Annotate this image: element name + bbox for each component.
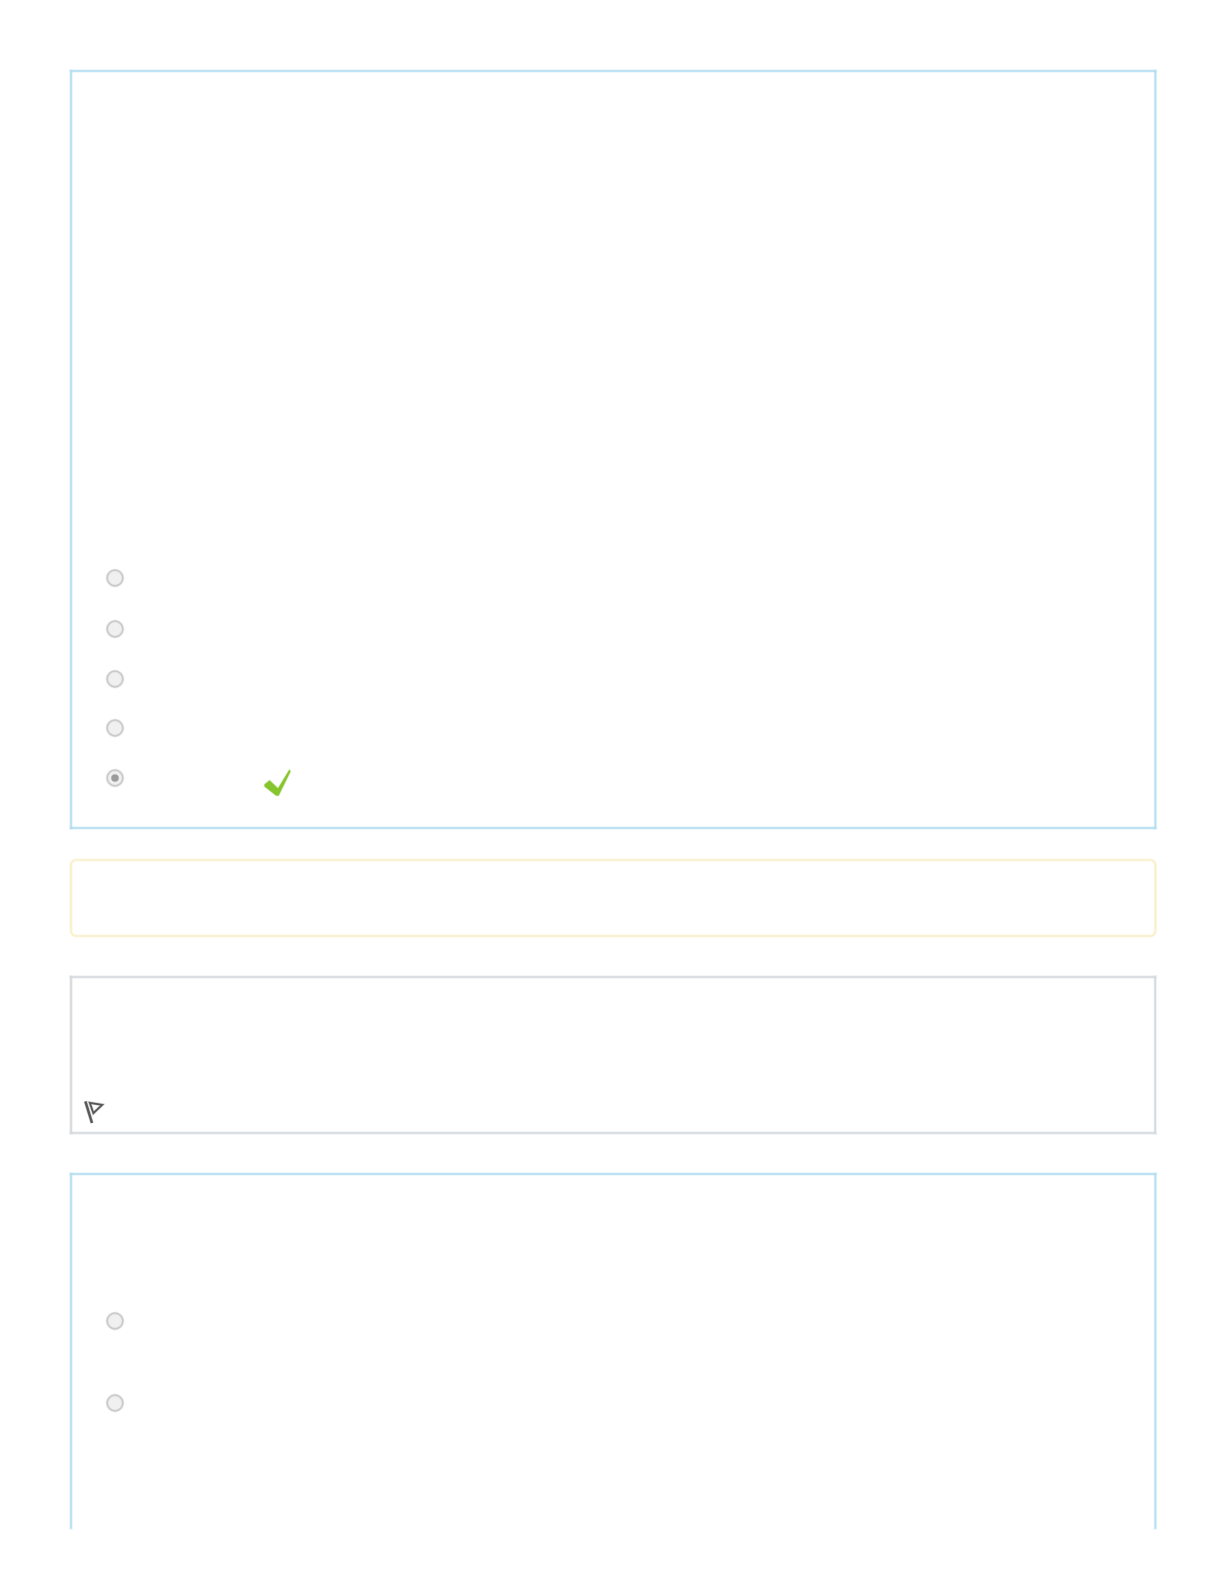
button[interactable]: Report this question <box>80 1096 110 1128</box>
button[interactable]: Question card <box>71 71 1156 828</box>
button[interactable]: Choice 2 <box>101 1389 129 1417</box>
button[interactable]: Choice 1 <box>101 1307 129 1335</box>
button[interactable]: Answer option 5 <box>101 764 129 792</box>
button[interactable]: Answer option 1 <box>101 564 129 592</box>
button[interactable]: Answer option 3 <box>101 665 129 693</box>
button[interactable]: Answer option 4 <box>101 714 129 742</box>
button[interactable]: Explanation note <box>71 860 1156 936</box>
button[interactable]: Next question card <box>71 1174 1156 1528</box>
button[interactable]: Details card <box>71 977 1156 1133</box>
button[interactable]: Answer option 2 <box>101 615 129 643</box>
